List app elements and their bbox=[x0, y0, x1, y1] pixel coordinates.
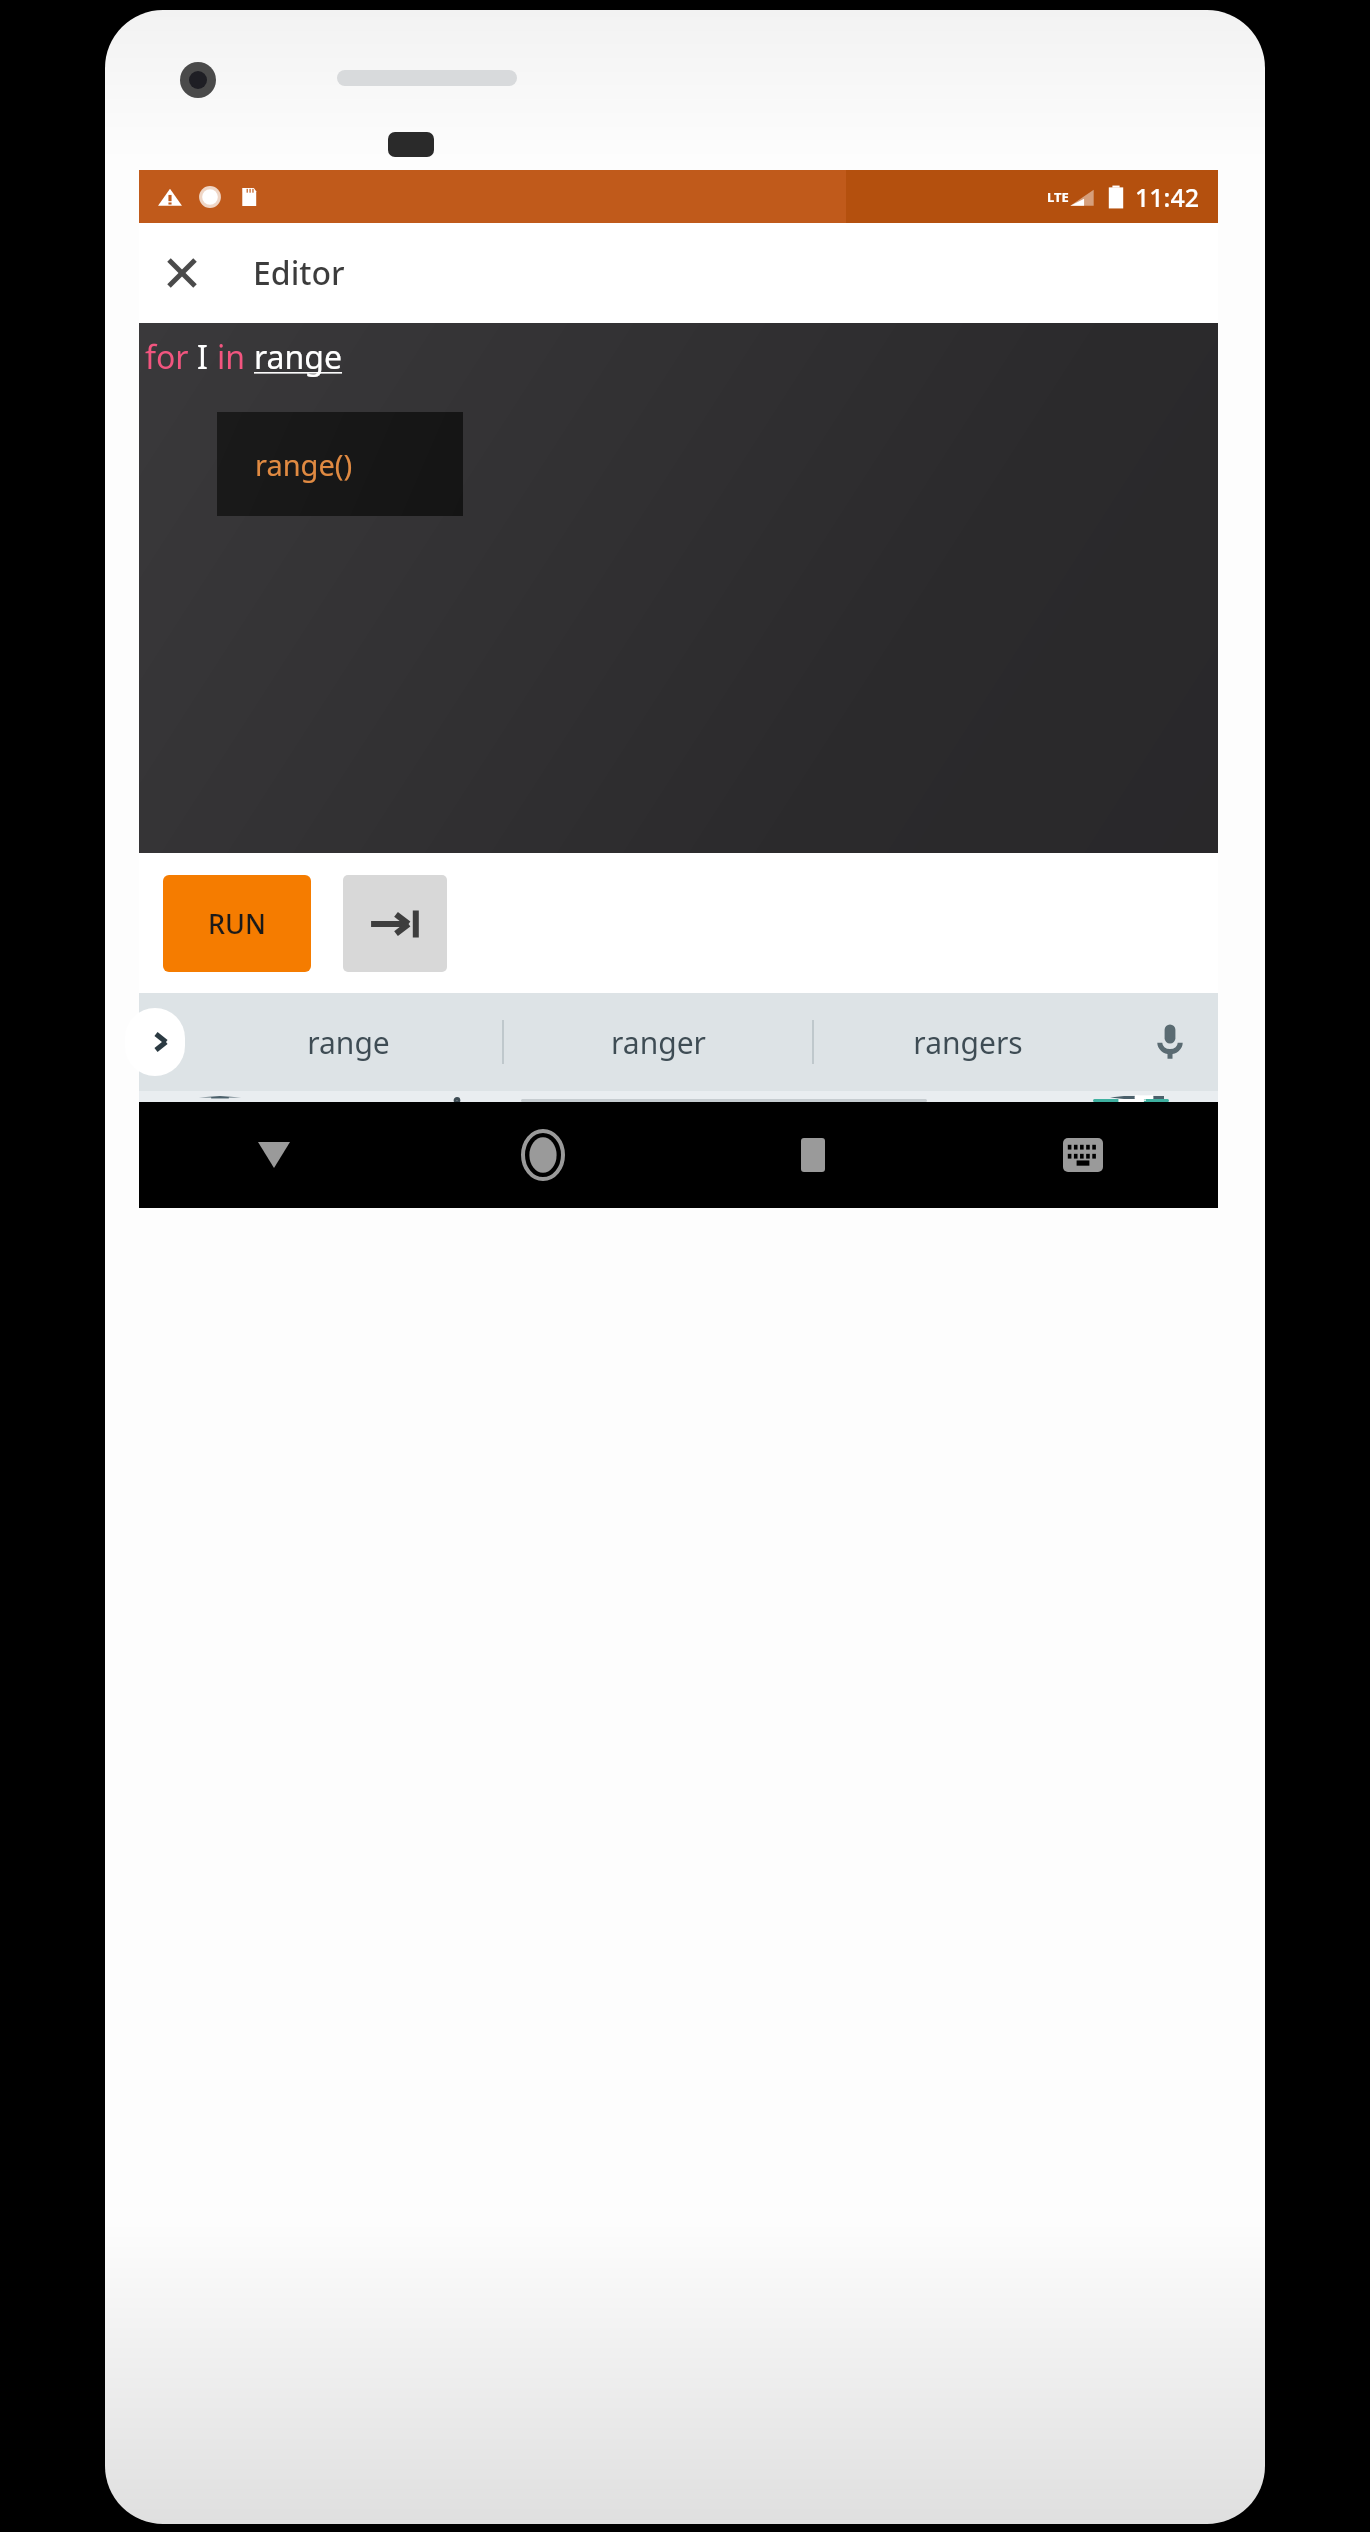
staticText: for bbox=[145, 335, 197, 379]
staticText: RUN bbox=[208, 905, 266, 942]
button[interactable]: x bbox=[408, 1096, 516, 1099]
staticText: range bbox=[307, 1022, 390, 1063]
staticText: x bbox=[451, 1096, 474, 1099]
staticText: in bbox=[217, 335, 254, 379]
button[interactable]: Hide keyboard bbox=[139, 1102, 408, 1208]
button[interactable]: range() bbox=[217, 412, 463, 516]
button[interactable]: Shift bbox=[139, 1096, 300, 1099]
button[interactable] bbox=[508, 1099, 940, 1102]
button[interactable]: Switch keyboard bbox=[948, 1102, 1218, 1208]
staticText: Editor bbox=[253, 251, 345, 295]
button[interactable]: RUN bbox=[163, 875, 311, 972]
staticText: ranger bbox=[611, 1022, 706, 1063]
button[interactable]: Voice input bbox=[1122, 993, 1218, 1091]
button[interactable]: Emoji bbox=[405, 1099, 508, 1102]
button[interactable]: Recent apps bbox=[678, 1102, 948, 1208]
button[interactable]: ranger bbox=[504, 993, 812, 1091]
button[interactable]: rangers bbox=[814, 993, 1122, 1091]
staticText: LTE bbox=[1047, 188, 1069, 206]
button[interactable]: Close bbox=[139, 230, 225, 316]
button[interactable]: range bbox=[195, 993, 502, 1091]
button[interactable]: Enter bbox=[1043, 1099, 1218, 1102]
button[interactable]: Backspace bbox=[1056, 1096, 1218, 1099]
button[interactable]: Expand suggestions bbox=[125, 1008, 185, 1076]
staticText: range() bbox=[255, 445, 353, 484]
staticText: I bbox=[197, 335, 217, 379]
button[interactable]: l bbox=[1056, 1093, 1164, 1096]
button[interactable]: Tab indent bbox=[343, 875, 447, 972]
staticText: 11:42 bbox=[1135, 180, 1200, 214]
button[interactable]: Home bbox=[408, 1102, 678, 1208]
staticText: range bbox=[254, 335, 343, 379]
staticText: rangers bbox=[913, 1022, 1023, 1063]
